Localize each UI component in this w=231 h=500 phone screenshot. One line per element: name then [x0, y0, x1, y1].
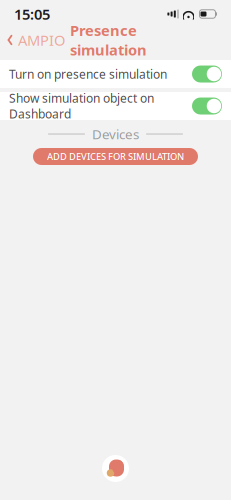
staticText: Show simulation object on Dashboard — [9, 90, 154, 122]
staticText: Turn on presence simulation — [9, 66, 167, 82]
staticText: Devices — [92, 125, 139, 143]
staticText: ADD DEVICES FOR SIMULATION — [47, 150, 184, 163]
button[interactable]: Turn on presence simulation — [0, 60, 231, 88]
button[interactable]: Show simulation object on Dashboard — [0, 92, 231, 120]
staticText: 15:05 — [14, 4, 50, 24]
button[interactable]: AMPIO — [6, 26, 65, 54]
staticText: AMPIO — [18, 30, 65, 50]
button[interactable]: ADD DEVICES FOR SIMULATION — [33, 148, 198, 165]
staticText: Presence simulation — [70, 20, 147, 59]
